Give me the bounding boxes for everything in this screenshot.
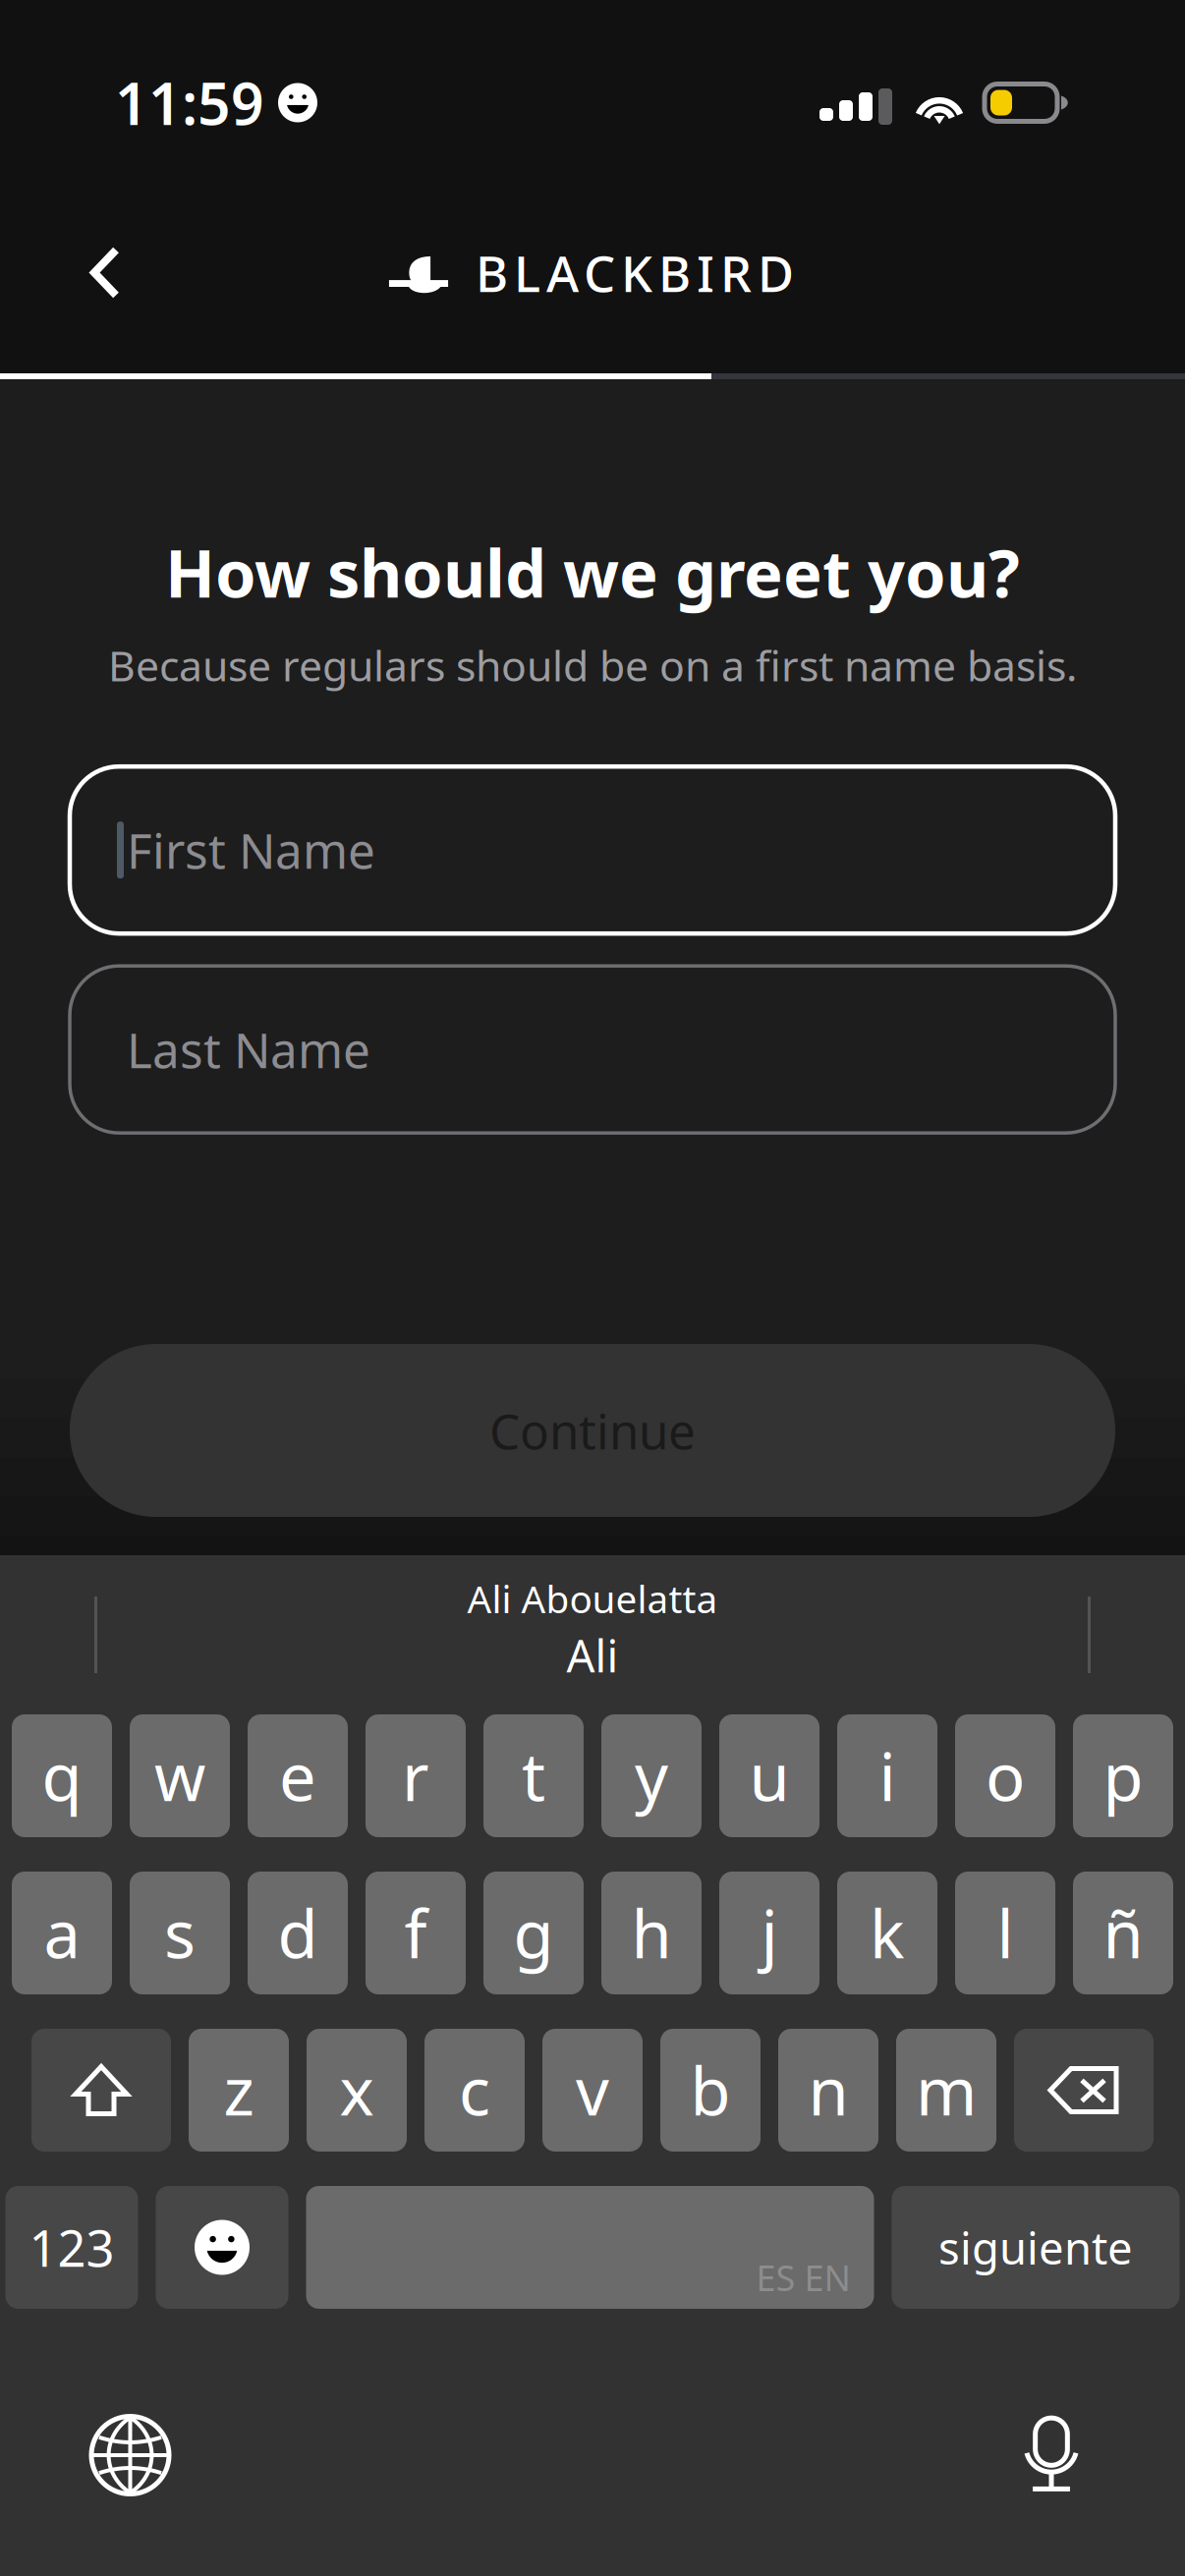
button[interactable]: u — [719, 1714, 819, 1837]
staticText: g — [513, 1889, 554, 1976]
staticText: v — [576, 2047, 609, 2134]
button[interactable]: Last Name — [70, 966, 1115, 1133]
staticText: First Name — [127, 818, 375, 882]
staticText: siguiente — [938, 2218, 1133, 2277]
button[interactable]: m — [896, 2029, 996, 2152]
button[interactable]: w — [130, 1714, 230, 1837]
button[interactable]: Next keyboard — [91, 2416, 169, 2494]
button[interactable]: Continue — [70, 1344, 1115, 1517]
staticText: a — [44, 1889, 80, 1976]
button[interactable]: x — [307, 2029, 407, 2152]
button[interactable]: First Name — [70, 767, 1115, 934]
staticText: z — [224, 2047, 254, 2134]
staticText: e — [279, 1732, 316, 1819]
button[interactable]: Shift — [31, 2029, 171, 2152]
staticText: Ali — [566, 1626, 619, 1685]
button[interactable]: ñ — [1073, 1872, 1173, 1994]
button[interactable]: Delete — [1014, 2029, 1154, 2152]
button[interactable]: t — [483, 1714, 584, 1837]
staticText: y — [635, 1732, 668, 1819]
button[interactable]: n — [778, 2029, 878, 2152]
staticText: o — [986, 1732, 1025, 1819]
button[interactable]: j — [719, 1872, 819, 1994]
staticText: c — [459, 2047, 490, 2134]
staticText: r — [402, 1732, 429, 1819]
button[interactable]: y — [601, 1714, 702, 1837]
button[interactable]: l — [955, 1872, 1055, 1994]
button[interactable]: e — [248, 1714, 348, 1837]
button[interactable]: Space — [306, 2186, 874, 2309]
button[interactable]: i — [837, 1714, 937, 1837]
staticText: k — [870, 1889, 905, 1976]
button[interactable]: p — [1073, 1714, 1173, 1837]
staticText: m — [916, 2047, 977, 2134]
staticText: f — [404, 1889, 427, 1976]
staticText: h — [631, 1889, 672, 1976]
button[interactable]: o — [955, 1714, 1055, 1837]
button[interactable]: q — [12, 1714, 112, 1837]
button[interactable]: g — [483, 1872, 584, 1994]
button[interactable]: 123 — [5, 2186, 138, 2309]
staticText: q — [42, 1732, 82, 1819]
button[interactable]: h — [601, 1872, 702, 1994]
button[interactable]: b — [660, 2029, 761, 2152]
staticText: How should we greet you? — [165, 529, 1020, 616]
staticText: x — [339, 2047, 374, 2134]
staticText: 11:59 — [115, 64, 264, 141]
button[interactable]: Back — [51, 219, 159, 327]
button[interactable]: r — [366, 1714, 466, 1837]
button[interactable]: siguiente — [892, 2186, 1180, 2309]
button[interactable]: Dictation — [1009, 2413, 1094, 2497]
button[interactable]: v — [542, 2029, 643, 2152]
staticText: s — [164, 1889, 196, 1976]
staticText: Continue — [489, 1398, 696, 1463]
button[interactable]: Emoji — [156, 2186, 288, 2309]
staticText: ñ — [1103, 1889, 1143, 1976]
button[interactable]: f — [366, 1872, 466, 1994]
staticText: t — [522, 1732, 545, 1819]
staticText: b — [690, 2047, 731, 2134]
staticText: d — [278, 1889, 318, 1976]
staticText: Last Name — [127, 1017, 370, 1082]
button[interactable]: k — [837, 1872, 937, 1994]
staticText: l — [997, 1889, 1014, 1976]
staticText: w — [154, 1732, 205, 1819]
staticText: j — [761, 1889, 778, 1976]
staticText: p — [1103, 1732, 1143, 1819]
button[interactable]: z — [189, 2029, 289, 2152]
button[interactable]: s — [130, 1872, 230, 1994]
staticText: ES EN — [756, 2254, 850, 2301]
staticText: BLACKBIRD — [476, 240, 794, 306]
staticText: u — [749, 1732, 790, 1819]
staticText: Ali Abouelatta — [467, 1573, 718, 1624]
button[interactable]: c — [424, 2029, 525, 2152]
staticText: Because regulars should be on a first na… — [108, 637, 1077, 693]
staticText: n — [808, 2047, 848, 2134]
staticText: i — [879, 1732, 896, 1819]
staticText: 123 — [29, 2214, 114, 2280]
button[interactable]: d — [248, 1872, 348, 1994]
button[interactable]: a — [12, 1872, 112, 1994]
